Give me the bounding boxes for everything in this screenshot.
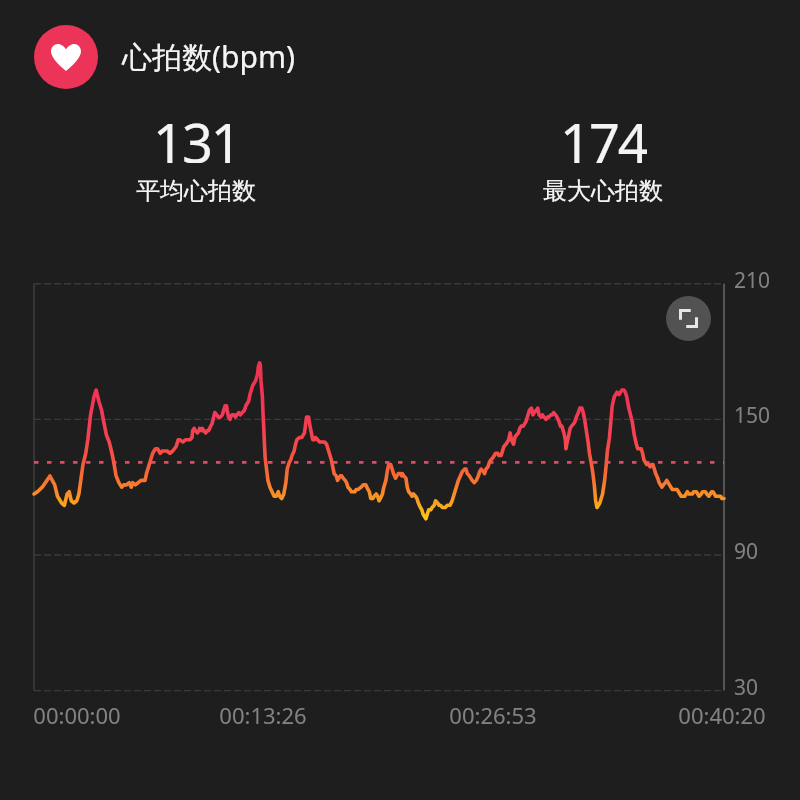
staticText: 174: [560, 105, 647, 163]
button[interactable]: Fullscreen: [666, 296, 711, 341]
button[interactable]: Heart rate: [34, 25, 98, 89]
staticText: 00:13:26: [219, 700, 307, 730]
staticText: 90: [734, 537, 759, 566]
staticText: 210: [734, 266, 771, 295]
staticText: 150: [734, 401, 771, 430]
staticText: 30: [734, 673, 759, 702]
staticText: 最大心拍数: [543, 176, 663, 206]
staticText: 心拍数(bpm): [122, 36, 295, 77]
staticText: 00:26:53: [449, 700, 537, 730]
staticText: 131: [153, 105, 240, 163]
button[interactable]: 174: [503, 100, 703, 212]
staticText: 00:40:20: [678, 700, 766, 730]
staticText: 00:00:00: [33, 700, 121, 730]
staticText: 平均心拍数: [136, 176, 256, 206]
button[interactable]: 131: [96, 100, 296, 212]
button[interactable]: Heart rate chart: [34, 284, 724, 691]
